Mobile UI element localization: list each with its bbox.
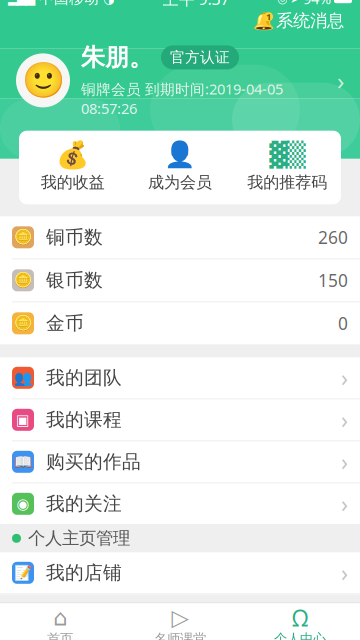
staticText: 铜币数 [46, 226, 103, 249]
staticText: 上午 9:37 [162, 0, 229, 9]
staticText: 🪙 [14, 272, 32, 289]
staticText: 🙂 [21, 61, 64, 100]
staticText: › [341, 363, 348, 393]
staticText: ▷ [171, 605, 188, 630]
button[interactable]: 🪙 [0, 259, 360, 301]
button[interactable]: 📖 [0, 441, 360, 482]
staticText: 系统消息 [276, 10, 344, 31]
staticText: ➤ [290, 0, 300, 5]
staticText: 首页 [47, 631, 73, 640]
staticText: 👤 [164, 140, 196, 169]
button[interactable]: 🔔 [249, 7, 350, 34]
button[interactable]: ▷ [120, 603, 240, 640]
staticText: ▣ [16, 411, 30, 428]
staticText: 铜牌会员 到期时间:2019-04-05 08:57:26 [81, 79, 283, 118]
staticText: 我的课程 [46, 408, 122, 431]
staticText: 朱朋。 [81, 43, 153, 72]
button[interactable]: ▓▒ [234, 131, 341, 204]
button[interactable]: 👥 [0, 357, 360, 398]
staticText: 我的团队 [46, 366, 122, 389]
staticText: 🪙 [14, 229, 32, 246]
staticText: ▓▒ [269, 141, 305, 168]
staticText: ◉ [16, 495, 29, 512]
staticText: 我的收益 [41, 173, 105, 192]
staticText: 我的关注 [46, 492, 122, 515]
staticText: 名师课堂 [154, 631, 206, 640]
button[interactable]: 💰 [19, 131, 126, 204]
staticText: 成为会员 [148, 173, 212, 192]
staticText: › [341, 447, 348, 477]
staticText: 📝 [14, 564, 32, 581]
staticText: 150 [318, 269, 348, 292]
staticText: 我的店铺 [46, 561, 122, 584]
staticText: 个人中心 [274, 631, 326, 640]
staticText: 银币数 [46, 269, 103, 292]
button[interactable]: 📝 [0, 552, 360, 593]
staticText: 0 [338, 312, 348, 335]
staticText: Ω [292, 603, 308, 633]
staticText: 我的推荐码 [247, 173, 327, 192]
staticText: › [341, 489, 348, 519]
button[interactable]: ⌂ [0, 603, 120, 640]
staticText: ⌂ [53, 605, 67, 630]
button[interactable]: 🪙 [0, 216, 360, 258]
staticText: 官方认证 [170, 48, 230, 66]
staticText: 购买的作品 [46, 450, 141, 473]
button[interactable]: 🙂 [0, 43, 360, 118]
button[interactable]: 🪙 [0, 302, 360, 344]
staticText: 📖 [14, 453, 32, 470]
staticText: 👥 [14, 369, 32, 386]
button[interactable]: 👤 [126, 131, 234, 204]
staticText: 🪙 [14, 315, 32, 332]
staticText: ▂▄▆ [8, 0, 35, 5]
button[interactable]: Ω [240, 603, 360, 640]
staticText: 金币 [46, 312, 84, 335]
staticText: 个人主页管理 [28, 528, 130, 549]
staticText: › [341, 558, 348, 588]
staticText: › [341, 405, 348, 435]
staticText: 🔔 [253, 11, 275, 31]
button[interactable]: ◉ [0, 483, 360, 524]
staticText: › [337, 64, 344, 96]
staticText: ◑ [103, 0, 115, 6]
staticText: 中国移动 [39, 0, 99, 8]
button[interactable]: ▣ [0, 399, 360, 440]
staticText: ◎ [277, 0, 287, 5]
staticText: 94% [303, 0, 331, 8]
staticText: 💰 [56, 139, 89, 170]
staticText: 1 [266, 10, 271, 23]
staticText: 260 [318, 226, 348, 249]
